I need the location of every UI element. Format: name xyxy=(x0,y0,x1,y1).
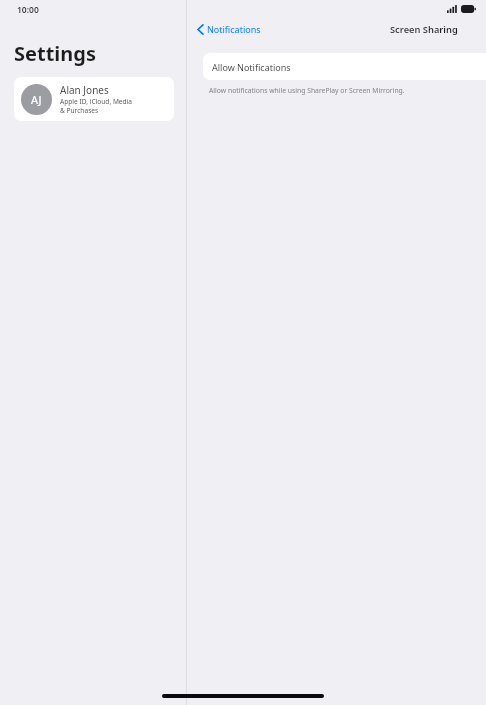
staticText: Notifications xyxy=(207,23,261,35)
button[interactable]: AJ xyxy=(14,77,174,121)
button[interactable]: Notifications xyxy=(195,23,263,35)
button[interactable]: Allow Notifications xyxy=(203,53,486,80)
staticText: Allow Notifications xyxy=(212,61,486,73)
staticText: Apple ID, iCloud, Media xyxy=(60,97,133,106)
staticText: Alan Jones xyxy=(60,83,109,97)
staticText: Settings xyxy=(14,40,96,67)
staticText: 10:00 xyxy=(17,4,39,16)
staticText: Screen Sharing xyxy=(390,23,458,36)
staticText: & Purchases xyxy=(60,106,99,115)
staticText: AJ xyxy=(31,92,42,107)
staticText: Allow notifications while using SharePla… xyxy=(209,86,405,95)
